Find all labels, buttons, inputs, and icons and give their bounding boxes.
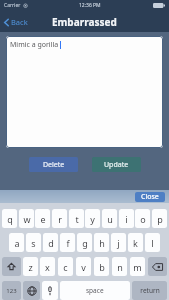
staticText: v [81, 261, 86, 273]
staticText: t [75, 213, 79, 225]
staticText: y [90, 213, 95, 225]
button[interactable]: return [132, 281, 167, 300]
button[interactable]: u [102, 209, 117, 228]
button[interactable]: Mimic a gorilla [6, 36, 163, 148]
button[interactable]: Back [2, 15, 30, 29]
button[interactable]: v [76, 257, 91, 276]
button[interactable]: Close [135, 192, 165, 202]
button[interactable]: p [152, 209, 167, 228]
button[interactable]: l [145, 233, 160, 252]
button[interactable]: Change keyboard [23, 281, 40, 300]
staticText: e [40, 213, 46, 225]
staticText: h [99, 237, 105, 249]
staticText: return [140, 286, 160, 295]
button[interactable]: o [135, 209, 150, 228]
staticText: Delete [43, 160, 65, 170]
staticText: Mimic a gorilla [10, 40, 59, 50]
button[interactable]: h [94, 233, 109, 252]
staticText: z [28, 261, 33, 273]
button[interactable]: k [128, 233, 143, 252]
button[interactable]: c [58, 257, 73, 276]
button[interactable]: Dictate [42, 281, 58, 300]
button[interactable]: a [9, 233, 24, 252]
button[interactable]: Delete [29, 157, 78, 172]
button[interactable]: g [77, 233, 92, 252]
button[interactable]: n [112, 257, 127, 276]
button[interactable]: i [119, 209, 134, 228]
button[interactable]: e [35, 209, 50, 228]
staticText: Carrier [4, 2, 21, 9]
staticText: b [99, 261, 105, 273]
staticText: Embarrassed [52, 15, 117, 29]
staticText: n [117, 261, 123, 273]
button[interactable]: m [130, 257, 145, 276]
staticText: i [125, 213, 128, 225]
staticText: u [107, 213, 113, 225]
button[interactable]: t [69, 209, 84, 228]
staticText: j [117, 237, 120, 249]
staticText: x [45, 261, 50, 273]
button[interactable]: 123 [2, 281, 21, 300]
button[interactable]: q [2, 209, 17, 228]
button[interactable]: d [43, 233, 58, 252]
staticText: space [86, 286, 104, 295]
staticText: g [82, 237, 88, 249]
button[interactable]: Backspace [148, 257, 167, 276]
staticText: k [133, 237, 138, 249]
staticText: 123 [6, 287, 17, 295]
button[interactable]: Shift [2, 257, 21, 276]
staticText: p [157, 213, 163, 225]
button[interactable]: y [85, 209, 100, 228]
button[interactable]: x [40, 257, 55, 276]
staticText: f [66, 237, 70, 249]
staticText: a [14, 237, 20, 249]
staticText: d [48, 237, 54, 249]
staticText: Back [11, 17, 28, 27]
staticText: w [23, 213, 31, 225]
button[interactable]: b [94, 257, 109, 276]
staticText: o [140, 213, 146, 225]
staticText: l [151, 237, 154, 249]
staticText: r [58, 213, 62, 225]
staticText: q [7, 213, 13, 225]
button[interactable]: Update [92, 157, 141, 172]
staticText: m [133, 261, 142, 273]
button[interactable]: space [60, 281, 130, 300]
staticText: 12:36 PM [79, 2, 101, 9]
button[interactable]: r [52, 209, 67, 228]
staticText: s [31, 237, 36, 249]
button[interactable]: s [26, 233, 41, 252]
staticText: Close [141, 192, 159, 202]
staticText: c [63, 261, 68, 273]
button[interactable]: f [60, 233, 75, 252]
button[interactable]: z [23, 257, 38, 276]
staticText: Update [104, 160, 129, 170]
button[interactable]: j [111, 233, 126, 252]
button[interactable]: w [19, 209, 34, 228]
